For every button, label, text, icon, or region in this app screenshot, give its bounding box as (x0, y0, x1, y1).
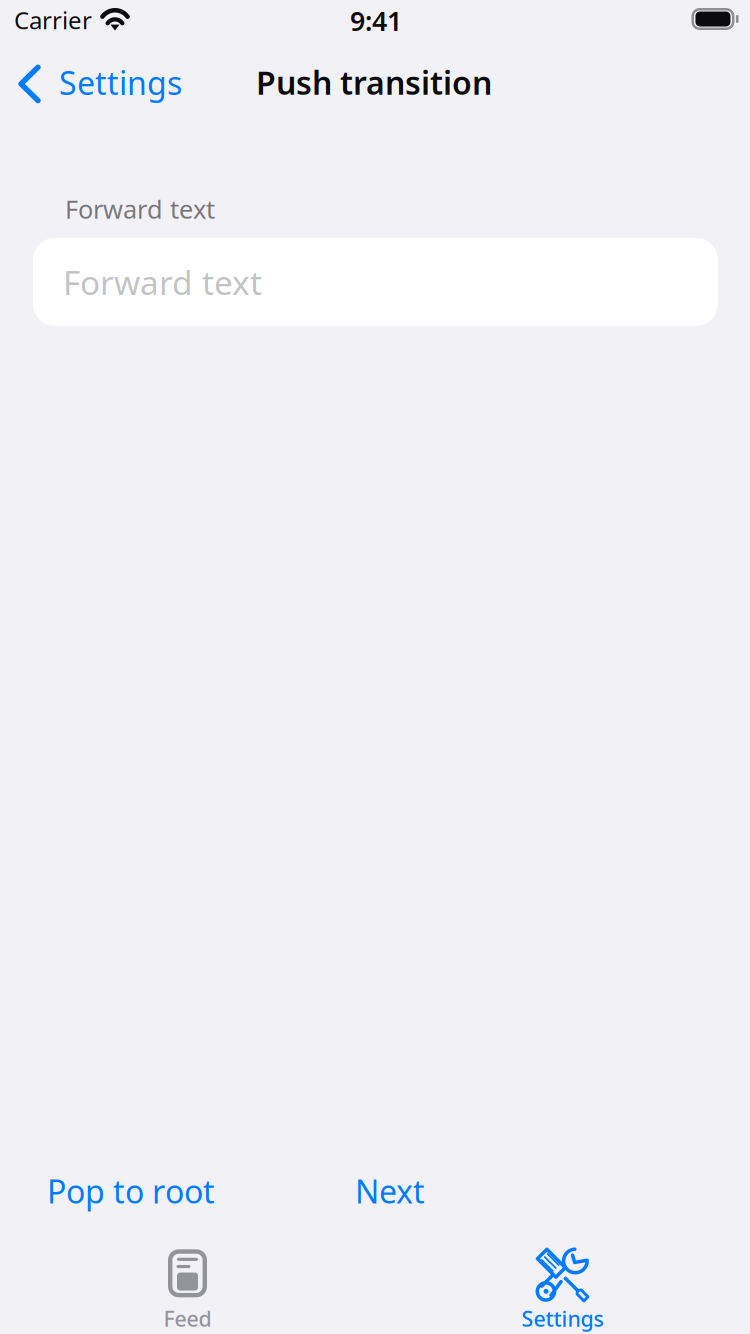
button[interactable]: Settings (375, 1255, 750, 1333)
staticText: Settings (59, 61, 182, 104)
staticText: Forward text (65, 192, 215, 226)
button[interactable]: Settings (0, 54, 220, 114)
staticText: Next (355, 1170, 425, 1212)
staticText: 9:41 (350, 3, 402, 38)
button[interactable]: Feed (0, 1256, 375, 1334)
staticText: Push transition (256, 61, 492, 103)
staticText: Pop to root (47, 1170, 215, 1212)
button[interactable]: Pop to root (47, 1163, 247, 1219)
staticText: Carrier (14, 4, 92, 36)
staticText: Settings (521, 1304, 603, 1333)
staticText: Feed (163, 1304, 211, 1333)
button[interactable]: Next (355, 1163, 475, 1219)
staticText: Forward text (63, 260, 262, 304)
